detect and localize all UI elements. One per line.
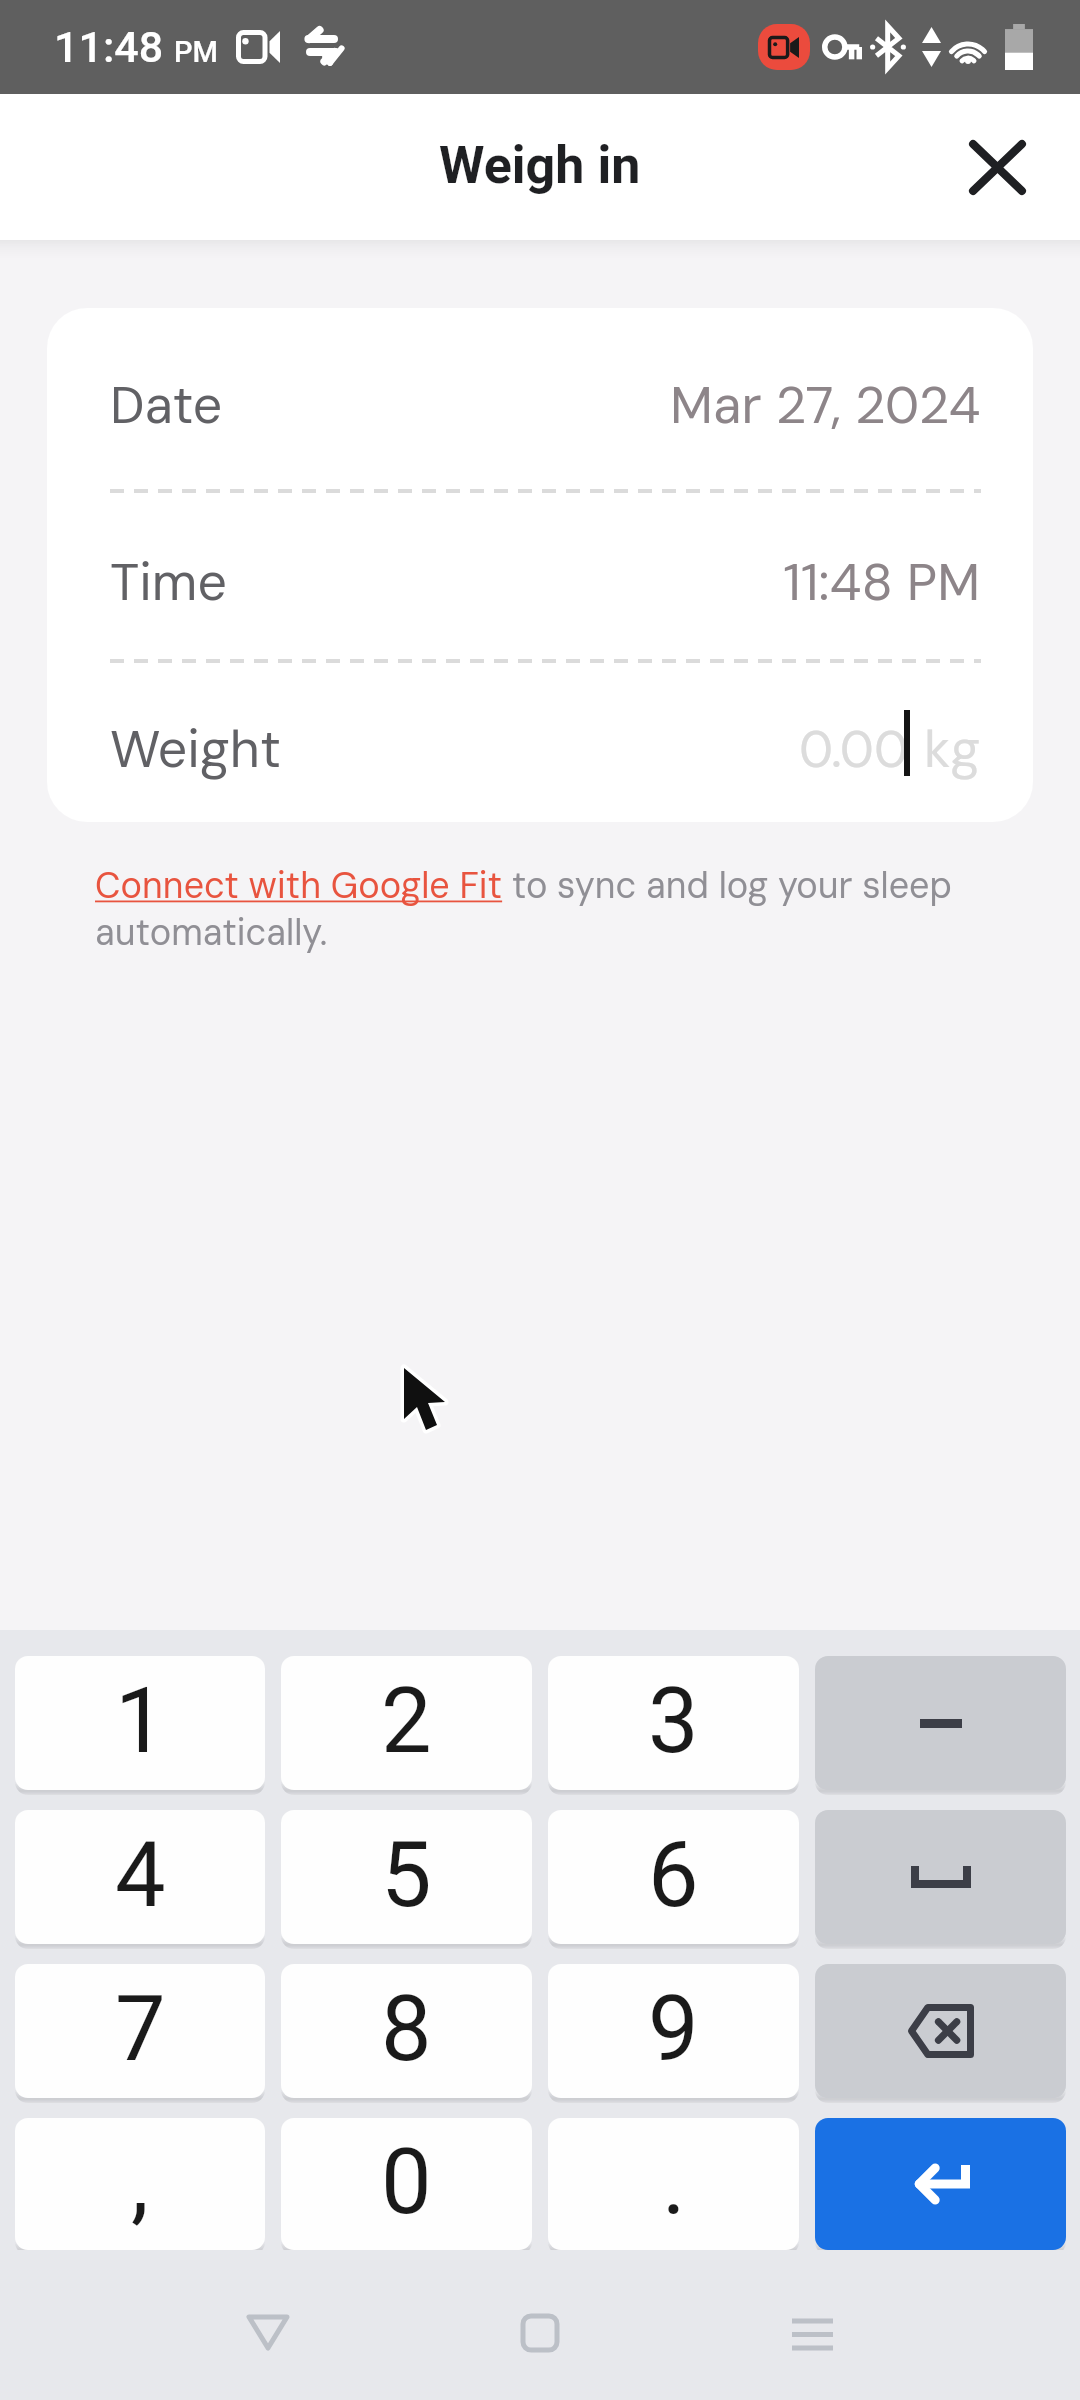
- button[interactable]: 5: [281, 1810, 532, 1944]
- staticText: 0: [381, 2130, 432, 2235]
- button[interactable]: 2: [281, 1656, 532, 1790]
- button[interactable]: .: [548, 2118, 799, 2250]
- button[interactable]: 7: [15, 1964, 265, 2098]
- staticText: Mar 27, 2024: [670, 371, 981, 439]
- button[interactable]: Weight: [47, 663, 1033, 822]
- staticText: .: [662, 2130, 686, 2235]
- staticText: 11:48: [54, 22, 164, 72]
- staticText: kg: [924, 715, 981, 783]
- button[interactable]: 9: [548, 1964, 799, 2098]
- button[interactable]: Enter: [815, 2118, 1066, 2250]
- staticText: PM: [174, 35, 218, 69]
- button[interactable]: Minus: [815, 1656, 1066, 1790]
- button[interactable]: 3: [548, 1656, 799, 1790]
- staticText: 8: [381, 1977, 432, 2082]
- button[interactable]: 6: [548, 1810, 799, 1944]
- staticText: 2: [381, 1669, 432, 1774]
- staticText: Weight: [110, 715, 282, 783]
- button[interactable]: Back: [188, 2250, 348, 2400]
- staticText: 6: [648, 1823, 699, 1928]
- button[interactable]: 0: [281, 2118, 532, 2250]
- staticText: 9: [648, 1977, 699, 2082]
- staticText: Time: [110, 548, 228, 616]
- button[interactable]: 8: [281, 1964, 532, 2098]
- button[interactable]: Time: [47, 493, 1033, 659]
- staticText: 5: [381, 1823, 432, 1928]
- button[interactable]: Backspace: [815, 1964, 1066, 2098]
- button[interactable]: Space: [815, 1810, 1066, 1944]
- button[interactable]: Recents: [732, 2250, 892, 2400]
- button[interactable]: 4: [15, 1810, 265, 1944]
- staticText: 11:48 PM: [783, 548, 981, 616]
- button[interactable]: Date: [47, 308, 1033, 489]
- button[interactable]: Connect with Google Fit to sync and log …: [95, 862, 1000, 956]
- staticText: Date: [110, 371, 223, 439]
- staticText: 0.00: [799, 715, 908, 783]
- staticText: 3: [648, 1669, 699, 1774]
- staticText: 7: [115, 1977, 166, 2082]
- staticText: ,: [131, 2130, 149, 2235]
- staticText: 4: [115, 1823, 166, 1928]
- staticText: Weigh in: [439, 135, 641, 196]
- button[interactable]: ,: [15, 2118, 265, 2250]
- staticText: 1: [115, 1669, 166, 1774]
- button[interactable]: 1: [15, 1656, 265, 1790]
- button[interactable]: Close: [952, 122, 1042, 212]
- button[interactable]: Home: [460, 2250, 620, 2400]
